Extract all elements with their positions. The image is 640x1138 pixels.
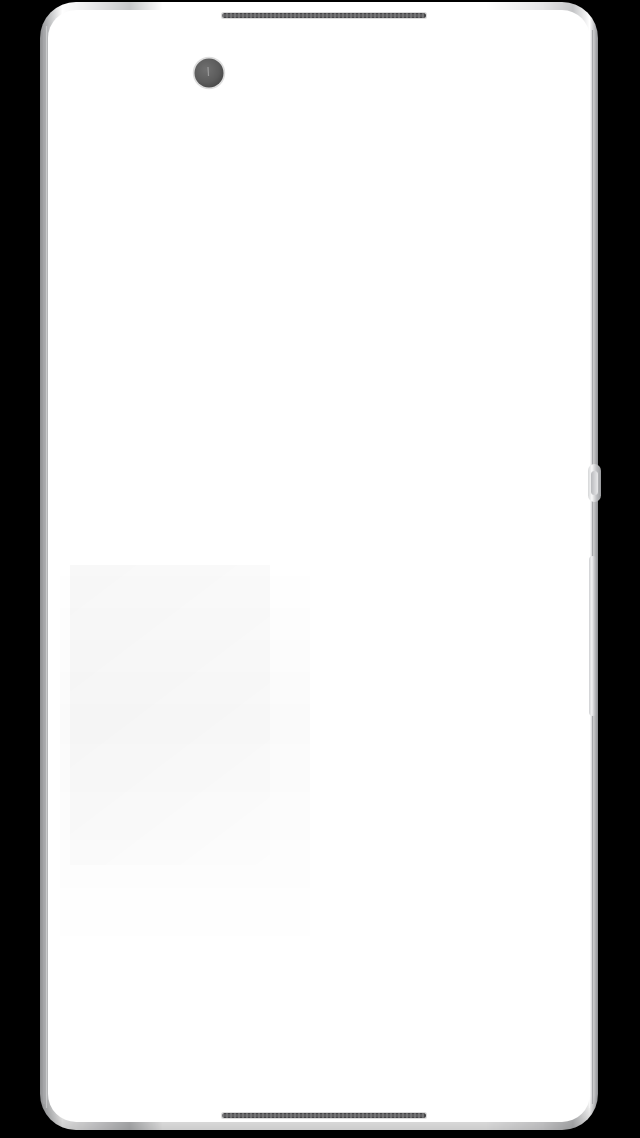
other: White smartphone device render — [0, 0, 640, 1138]
